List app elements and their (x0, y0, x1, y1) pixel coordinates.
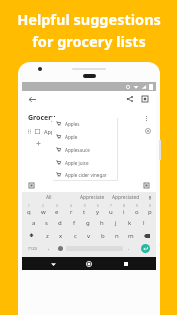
button[interactable]: v (82, 229, 96, 242)
button[interactable]: 5 (78, 203, 91, 216)
button[interactable]: ?123 (22, 242, 43, 255)
button[interactable]: Back (47, 258, 59, 270)
staticText: x (59, 232, 63, 240)
button[interactable]: b (96, 229, 110, 242)
staticText: w (41, 208, 46, 216)
staticText: 1 (28, 204, 30, 208)
button[interactable]: More options (140, 112, 152, 124)
staticText: Apple (65, 134, 78, 140)
button[interactable]: Voice input (146, 194, 154, 202)
staticText: . (128, 245, 130, 252)
button[interactable]: Clear (143, 126, 153, 136)
staticText: Apple cider vinegar (65, 172, 107, 178)
staticText: t (83, 208, 86, 216)
staticText: 4 (70, 204, 72, 208)
button[interactable]: Emoji (54, 242, 66, 255)
staticText: 7 (110, 204, 112, 208)
staticText: e (55, 208, 59, 216)
button[interactable]: Apple (52, 130, 117, 143)
button[interactable]: z (40, 229, 54, 242)
button[interactable]: m (124, 229, 138, 242)
staticText: v (87, 232, 91, 240)
button[interactable]: 1 (22, 203, 36, 216)
button[interactable]: a (27, 216, 40, 229)
staticText: Apples (65, 121, 80, 127)
button[interactable]: Appreciate (80, 194, 105, 201)
button[interactable]: Save (139, 93, 151, 105)
staticText: ?123 (28, 246, 38, 252)
button[interactable]: Back (27, 94, 38, 105)
staticText: d (58, 219, 62, 227)
button[interactable]: c (68, 229, 82, 242)
staticText: 2 (42, 204, 44, 208)
staticText: i (123, 208, 125, 216)
staticText: for grocery lists (32, 31, 146, 51)
button[interactable]: k (123, 216, 137, 229)
staticText: q (27, 208, 31, 216)
staticText: g (86, 219, 90, 227)
staticText: Grocery (28, 113, 56, 123)
staticText: n (115, 232, 119, 240)
button[interactable]: Shift (22, 229, 40, 242)
button[interactable]: f (67, 216, 81, 229)
button[interactable]: All (46, 194, 52, 201)
button[interactable]: Menu (141, 180, 152, 191)
button[interactable]: . (123, 242, 134, 255)
button[interactable]: 2 (36, 203, 50, 216)
button[interactable]: Add item (26, 180, 37, 191)
button[interactable]: j (109, 216, 123, 229)
staticText: z (46, 232, 49, 240)
staticText: s (45, 219, 48, 227)
button[interactable]: g (81, 216, 95, 229)
staticText: m (128, 232, 134, 240)
staticText: Helpful suggestions (17, 9, 161, 29)
button[interactable]: Applesauce (52, 143, 117, 156)
button[interactable]: , (43, 242, 54, 255)
staticText: 5 (84, 204, 86, 208)
button[interactable]: h (95, 216, 109, 229)
staticText: p (148, 208, 152, 216)
button[interactable]: Backspace (138, 229, 156, 242)
staticText: l (143, 219, 145, 227)
staticText: c (74, 232, 77, 240)
button[interactable]: Apples (52, 117, 117, 130)
button[interactable]: 6 (91, 203, 104, 216)
staticText: h (100, 219, 104, 227)
staticText: 3 (56, 204, 58, 208)
button[interactable]: 7 (104, 203, 117, 216)
button[interactable]: Appl (22, 125, 156, 137)
button[interactable]: x (54, 229, 68, 242)
staticText: 0 (149, 204, 151, 208)
staticText: r (70, 208, 73, 216)
staticText: Applesauce (65, 147, 90, 153)
button[interactable]: 0 (143, 203, 156, 216)
staticText: Appl (44, 128, 56, 135)
button[interactable]: Enter (141, 244, 150, 253)
staticText: 8 (123, 204, 125, 208)
button[interactable]: Apple juice (52, 156, 117, 169)
button[interactable]: Apple cider vinegar (52, 169, 117, 180)
staticText: , (48, 245, 50, 252)
button[interactable]: Share (124, 93, 136, 105)
button[interactable]: d (53, 216, 67, 229)
staticText: b (101, 232, 105, 240)
button[interactable]: 9 (130, 203, 143, 216)
staticText: k (128, 219, 132, 227)
button[interactable]: n (110, 229, 124, 242)
button[interactable] (22, 137, 156, 149)
staticText: j (115, 219, 117, 227)
button[interactable]: l (137, 216, 151, 229)
staticText: y (96, 208, 100, 216)
staticText: u (109, 208, 113, 216)
button[interactable]: s (40, 216, 53, 229)
button[interactable]: Appreciated (112, 194, 140, 201)
staticText: o (135, 208, 139, 216)
staticText: Apple juice (65, 160, 89, 166)
button[interactable]: Recents (120, 258, 132, 270)
button[interactable]: 8 (117, 203, 130, 216)
button[interactable]: 4 (64, 203, 78, 216)
button[interactable]: 3 (50, 203, 64, 216)
button[interactable]: Home (83, 258, 95, 270)
staticText: a (32, 219, 36, 227)
